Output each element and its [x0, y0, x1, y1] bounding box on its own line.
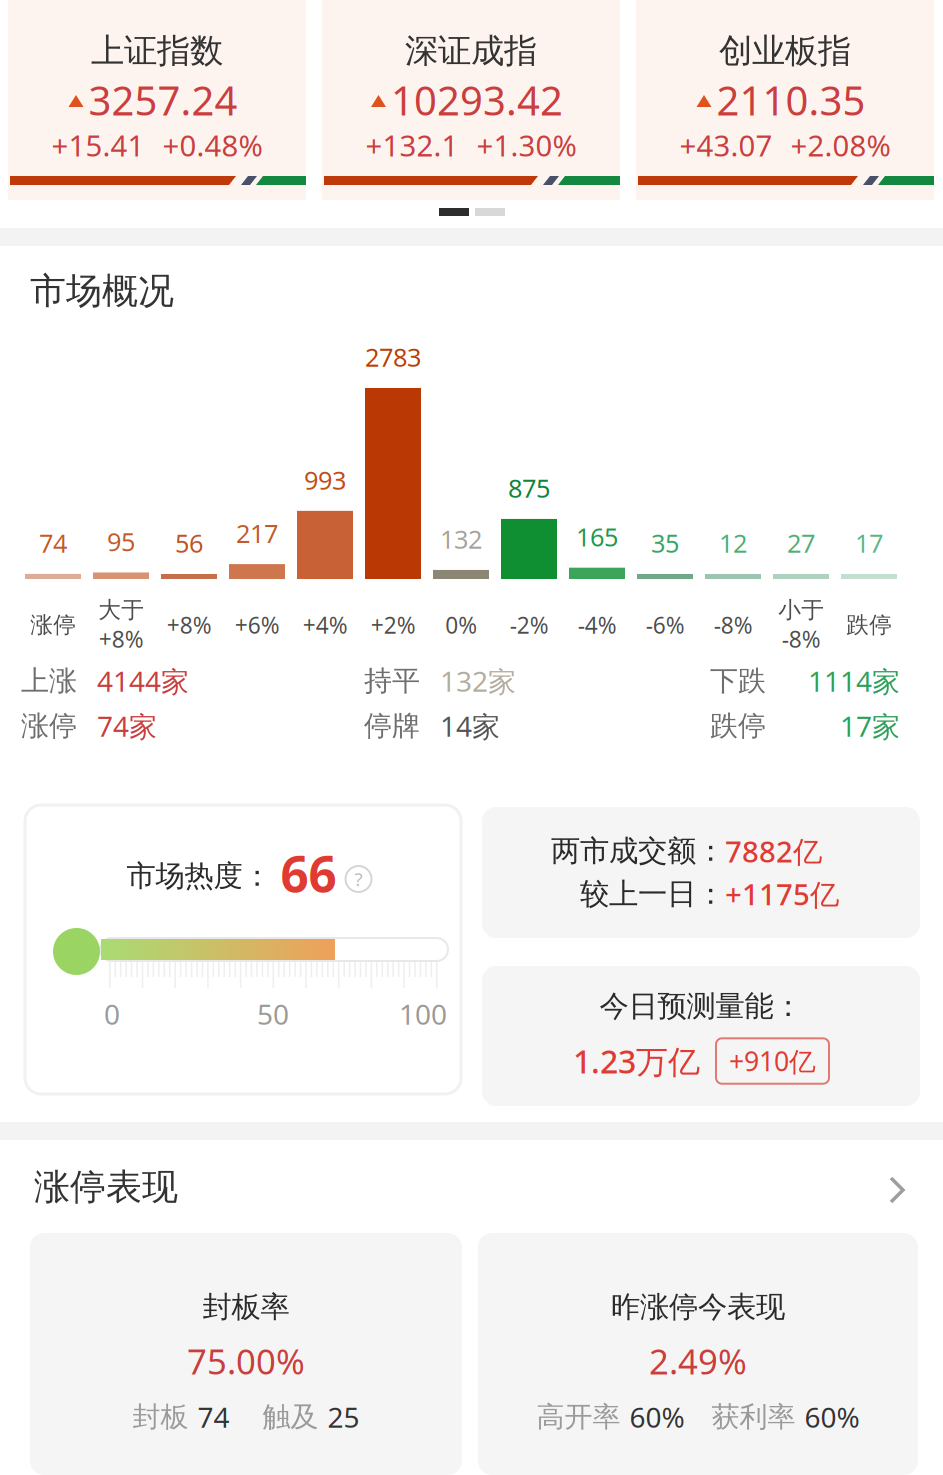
staticText: 875	[508, 471, 550, 505]
staticText: 今日预测量能：	[599, 988, 802, 1024]
staticText: 10293.42	[391, 73, 563, 126]
staticText: 涨停	[21, 709, 77, 743]
staticText: +2%	[370, 610, 415, 640]
staticText: +4%	[302, 610, 347, 640]
staticText: 封板率	[202, 1289, 289, 1325]
button[interactable]: 创业板指	[636, 0, 934, 200]
staticText: 市场概况	[30, 269, 174, 313]
staticText: 74	[197, 1398, 229, 1436]
staticText: +1175亿	[725, 874, 839, 913]
staticText: 993	[304, 463, 346, 497]
staticText: +1.30%	[476, 125, 576, 164]
staticText: 高开率	[536, 1400, 620, 1434]
staticText: 市场热度：	[126, 858, 271, 894]
staticText: 217	[236, 516, 278, 550]
staticText: 25	[327, 1398, 359, 1436]
staticText: 17	[855, 526, 883, 560]
staticText: 昨涨停今表现	[611, 1289, 785, 1325]
staticText: 1.23万亿	[573, 1040, 700, 1082]
staticText: 60%	[629, 1398, 684, 1436]
staticText: 上证指数	[91, 30, 223, 71]
staticText: -2%	[509, 610, 548, 640]
staticText: 74家	[97, 707, 157, 745]
staticText: +6%	[234, 610, 279, 640]
staticText: 涨停表现	[34, 1165, 178, 1209]
staticText: -4%	[577, 610, 616, 640]
staticText: 上涨	[21, 664, 77, 698]
staticText: -6%	[645, 610, 684, 640]
staticText: 3257.24	[88, 73, 237, 126]
staticText: -8%	[713, 610, 752, 640]
staticText: 封板	[132, 1400, 188, 1434]
staticText: 0%	[445, 610, 477, 640]
staticText: 7882亿	[725, 831, 822, 870]
staticText: 较上一日：	[580, 876, 725, 912]
staticText: 持平	[364, 664, 420, 698]
button[interactable]: 深证成指	[322, 0, 620, 200]
staticText: ?	[354, 867, 362, 891]
staticText: +8%	[166, 610, 211, 640]
staticText: 2783	[365, 340, 421, 374]
staticText: +132.1	[365, 125, 458, 164]
staticText: 2.49%	[649, 1338, 747, 1384]
staticText: 1114家	[808, 662, 900, 700]
staticText: 深证成指	[405, 30, 537, 71]
button[interactable]: 页面指示器	[439, 208, 505, 216]
staticText: 56	[175, 526, 203, 560]
staticText: 35	[651, 526, 679, 560]
staticText: 165	[576, 520, 618, 553]
staticText: 2110.35	[716, 73, 865, 126]
staticText: 4144家	[97, 662, 189, 700]
button[interactable]: 昨涨停今表现	[478, 1233, 918, 1475]
staticText: 停牌	[364, 709, 420, 743]
staticText: 132家	[440, 662, 516, 700]
staticText: 创业板指	[719, 30, 851, 71]
button[interactable]: 上证指数	[8, 0, 306, 200]
staticText: 涨停	[30, 611, 76, 639]
staticText: +2.08%	[790, 125, 890, 164]
staticText: 获利率	[711, 1400, 795, 1434]
staticText: +15.41	[51, 125, 144, 164]
staticText: 触及	[262, 1400, 318, 1434]
staticText: +0.48%	[162, 125, 262, 164]
staticText: 两市成交额：	[551, 833, 725, 869]
staticText: 12	[719, 526, 747, 560]
staticText: 75.00%	[187, 1338, 305, 1384]
staticText: 17家	[840, 707, 900, 745]
staticText: 0	[104, 995, 120, 1033]
staticText: 27	[787, 526, 815, 560]
staticText: 60%	[804, 1398, 859, 1436]
staticText: 跌停	[846, 611, 892, 639]
staticText: 100	[399, 995, 447, 1033]
staticText: 下跌	[710, 664, 766, 698]
staticText: +43.07	[679, 125, 772, 164]
button[interactable]: 查看更多涨停表现	[889, 1176, 907, 1204]
staticText: 小于 -8%	[778, 596, 824, 654]
staticText: 66	[280, 840, 336, 906]
staticText: +910亿	[729, 1043, 816, 1079]
staticText: 50	[257, 995, 289, 1033]
staticText: 74	[39, 526, 67, 560]
staticText: 95	[107, 525, 135, 558]
button[interactable]: 封板率	[30, 1233, 462, 1475]
staticText: 132	[440, 522, 482, 556]
staticText: 跌停	[710, 709, 766, 743]
staticText: 大于 +8%	[98, 596, 144, 654]
staticText: 14家	[440, 707, 500, 745]
